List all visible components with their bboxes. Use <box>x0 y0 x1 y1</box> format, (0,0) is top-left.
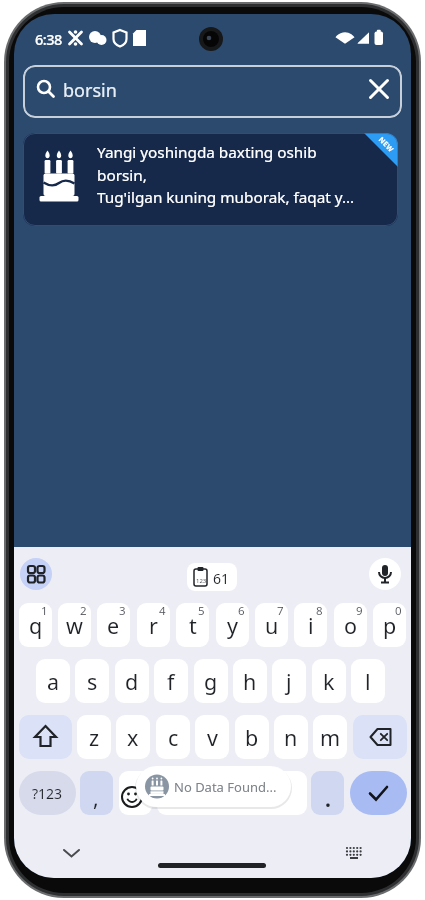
button[interactable]: b <box>235 715 269 759</box>
button[interactable]: v <box>195 715 229 759</box>
staticText: u <box>265 611 279 640</box>
staticText: j <box>286 667 292 696</box>
button[interactable]: t <box>176 603 209 647</box>
staticText: NEW <box>376 135 396 155</box>
button[interactable]: h <box>233 659 267 703</box>
button[interactable]: , <box>80 771 113 815</box>
staticText: w <box>66 611 83 640</box>
button[interactable]: c <box>156 715 190 759</box>
button[interactable]: i <box>294 603 327 647</box>
button[interactable] <box>119 771 152 815</box>
button[interactable] <box>340 841 366 863</box>
staticText: a <box>47 667 60 696</box>
staticText: 6 <box>238 603 245 619</box>
staticText: n <box>284 723 298 752</box>
staticText: No Data Found... <box>174 778 277 796</box>
staticText: Tug'ilgan kuning muborak, faqat y… <box>97 187 355 208</box>
staticText: q <box>29 611 43 640</box>
button[interactable] <box>157 771 307 815</box>
button[interactable]: k <box>312 659 346 703</box>
button[interactable]: e <box>97 603 130 647</box>
staticText: l <box>365 667 371 696</box>
staticText: z <box>89 723 100 752</box>
staticText: 4 <box>159 603 166 619</box>
staticText: c <box>168 723 179 752</box>
staticText: 8 <box>316 603 323 619</box>
button[interactable]: u <box>255 603 288 647</box>
staticText: Yangi yoshingda baxting oshib <box>97 142 317 163</box>
button[interactable]: ?123 <box>19 771 76 815</box>
staticText: . <box>325 785 331 814</box>
staticText: x <box>127 723 139 752</box>
button[interactable]: q <box>19 603 52 647</box>
staticText: borsin <box>63 78 117 103</box>
button[interactable]: w <box>58 603 91 647</box>
button[interactable]: . <box>311 771 344 815</box>
staticText: borsin, <box>97 165 147 186</box>
staticText: 7 <box>277 603 284 619</box>
button[interactable]: f <box>154 659 188 703</box>
button[interactable] <box>353 715 407 759</box>
staticText: 61 <box>213 569 230 588</box>
staticText: v <box>207 723 218 752</box>
staticText: t <box>189 611 197 640</box>
button[interactable] <box>19 715 72 759</box>
staticText: g <box>204 667 218 696</box>
staticText: ?123 <box>32 784 63 803</box>
staticText: 123 <box>196 577 207 585</box>
staticText: r <box>149 611 158 640</box>
button[interactable]: n <box>274 715 308 759</box>
button[interactable]: y <box>216 603 249 647</box>
button[interactable]: a <box>36 659 70 703</box>
button[interactable]: 123 <box>187 563 237 591</box>
staticText: k <box>323 667 335 696</box>
staticText: e <box>107 611 120 640</box>
button[interactable]: borsin <box>23 65 402 118</box>
button[interactable] <box>369 558 401 590</box>
staticText: 6:38 <box>35 29 62 49</box>
button[interactable]: j <box>272 659 306 703</box>
staticText: 1 <box>41 603 48 619</box>
staticText: s <box>87 667 98 696</box>
button[interactable]: x <box>116 715 150 759</box>
button[interactable]: r <box>137 603 170 647</box>
staticText: 9 <box>356 603 363 619</box>
button[interactable]: z <box>77 715 111 759</box>
button[interactable]: s <box>75 659 109 703</box>
staticText: 0 <box>395 603 402 619</box>
button[interactable] <box>20 558 52 590</box>
button[interactable]: g <box>194 659 228 703</box>
button[interactable]: Yangi yoshingda baxting oshib <box>23 133 398 226</box>
staticText: i <box>308 611 314 640</box>
button[interactable]: o <box>334 603 367 647</box>
staticText: m <box>320 723 341 752</box>
staticText: b <box>245 723 259 752</box>
button[interactable]: m <box>313 715 347 759</box>
staticText: y <box>227 611 238 640</box>
button[interactable] <box>58 843 86 863</box>
staticText: 5 <box>198 603 205 619</box>
staticText: o <box>344 611 358 640</box>
staticText: f <box>167 667 175 696</box>
staticText: 2 <box>80 603 87 619</box>
staticText: p <box>383 611 397 640</box>
button[interactable]: l <box>351 659 385 703</box>
button[interactable]: p <box>373 603 406 647</box>
staticText: h <box>243 667 257 696</box>
staticText: 3 <box>119 603 126 619</box>
staticText: , <box>93 784 99 813</box>
button[interactable] <box>350 771 407 815</box>
staticText: d <box>125 667 139 696</box>
button[interactable]: d <box>115 659 149 703</box>
